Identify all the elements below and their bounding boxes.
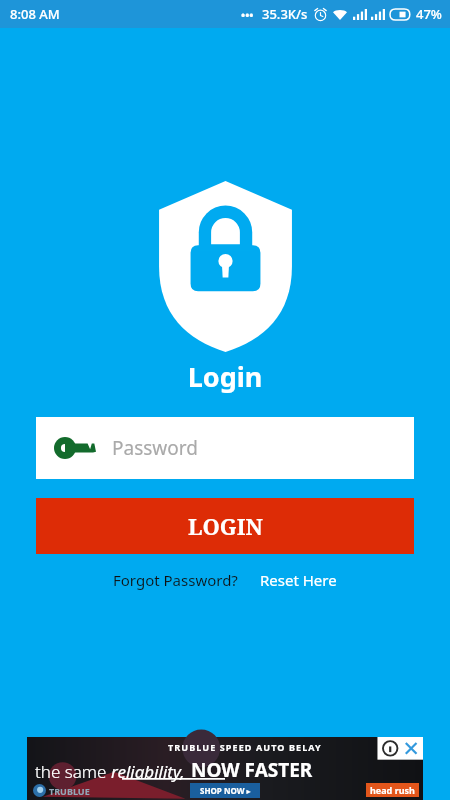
staticText: Password (112, 435, 198, 461)
button[interactable]: TRUBLUE SPEED AUTO BELAY (27, 737, 423, 800)
staticText: head rush (370, 784, 415, 796)
staticText: Login (0, 358, 450, 395)
button[interactable]: SHOP NOW ▸ (190, 783, 260, 798)
staticText: 47% (416, 5, 442, 23)
button[interactable]: LOGIN (36, 498, 414, 554)
staticText: Forgot Password? (113, 570, 238, 590)
button[interactable]: Reset Here (256, 566, 341, 594)
staticText: reliability, (111, 760, 185, 783)
staticText: the same (35, 760, 111, 783)
button[interactable]: Forgot Password? (109, 566, 242, 594)
staticText: 35.3K/s (262, 5, 308, 23)
staticText: SHOP NOW ▸ (200, 785, 251, 796)
staticText: ••• (241, 7, 254, 22)
staticText: 8:08 AM (10, 5, 60, 23)
staticText: NOW FASTER (191, 757, 313, 783)
staticText: TRUBLUE (49, 785, 90, 797)
staticText: LOGIN (188, 511, 263, 541)
staticText: TRUBLUE SPEED AUTO BELAY (168, 741, 322, 753)
staticText: Reset Here (260, 570, 337, 590)
button[interactable]: Password (36, 417, 414, 479)
